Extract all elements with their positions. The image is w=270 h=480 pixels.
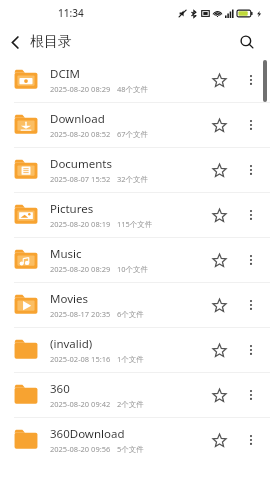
button[interactable]: Favorite [202,333,236,367]
button[interactable]: Documents [0,148,270,192]
button[interactable]: Favorite [202,108,236,142]
button[interactable]: Download [0,103,270,147]
staticText: 2025-08-17 20:35 [50,309,111,319]
button[interactable]: 360Download [0,418,270,462]
button[interactable]: Favorite [202,198,236,232]
button[interactable]: 360 [0,373,270,417]
button[interactable]: Back [0,27,30,57]
button[interactable]: More options [236,335,266,365]
staticText: 2025-08-20 09:56 [50,444,111,454]
staticText: 1个文件 [117,354,144,364]
button[interactable]: More options [236,200,266,230]
staticText: 2025-08-20 08:29 [50,84,111,94]
staticText: Music [50,246,82,262]
staticText: 5个文件 [117,444,144,454]
staticText: 10个文件 [117,264,149,274]
staticText: 2025-08-07 15:52 [50,174,111,184]
staticText: 2025-02-08 15:16 [50,354,111,364]
staticText: 2025-08-20 09:42 [50,399,111,409]
button[interactable]: More options [236,65,266,95]
staticText: 115个文件 [117,219,153,229]
button[interactable]: Favorite [202,288,236,322]
button[interactable]: Favorite [202,153,236,187]
staticText: 6个文件 [117,309,144,319]
button[interactable]: More options [236,110,266,140]
staticText: Documents [50,156,112,172]
button[interactable]: More options [236,425,266,455]
staticText: 2个文件 [117,399,144,409]
button[interactable]: Favorite [202,63,236,97]
button[interactable]: Favorite [202,378,236,412]
button[interactable]: Pictures [0,193,270,237]
button[interactable]: Music [0,238,270,282]
staticText: 2025-08-20 08:19 [50,219,111,229]
button[interactable]: More options [236,245,266,275]
button[interactable]: More options [236,380,266,410]
staticText: 67个文件 [117,129,149,139]
staticText: 根目录 [30,33,72,51]
button[interactable]: DCIM [0,58,270,102]
button[interactable]: More options [236,155,266,185]
staticText: Pictures [50,201,94,217]
staticText: 2025-08-20 08:29 [50,264,111,274]
staticText: Movies [50,291,88,307]
staticText: 2025-08-20 08:52 [50,129,111,139]
staticText: DCIM [50,66,80,82]
button[interactable]: (invalid) [0,328,270,372]
staticText: 48个文件 [117,84,149,94]
staticText: 11:34 [58,6,84,20]
button[interactable]: Favorite [202,243,236,277]
staticText: 360Download [50,426,125,442]
button[interactable]: Favorite [202,423,236,457]
staticText: (invalid) [50,336,93,352]
button[interactable]: Movies [0,283,270,327]
staticText: 360 [50,381,70,397]
button[interactable]: Search [232,27,262,57]
staticText: Download [50,111,105,127]
button[interactable]: More options [236,290,266,320]
staticText: 32个文件 [117,174,149,184]
